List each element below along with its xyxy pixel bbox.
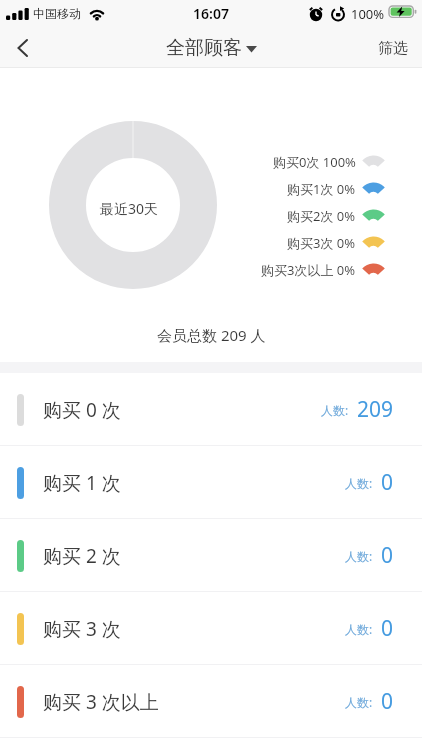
- staticText: 购买3次以上 0%: [261, 261, 356, 279]
- button[interactable]: [3, 28, 41, 68]
- staticText: 购买1次 0%: [287, 180, 356, 198]
- staticText: 人数:: [321, 402, 349, 418]
- button[interactable]: 购买 3 次以上: [0, 665, 422, 738]
- staticText: 0: [381, 468, 394, 497]
- staticText: 209: [357, 395, 394, 424]
- staticText: 购买 0 次: [43, 397, 121, 423]
- staticText: 中国移动: [33, 6, 81, 21]
- staticText: 0: [381, 687, 394, 716]
- button[interactable]: 购买 2 次: [0, 519, 422, 592]
- staticText: 购买3次 0%: [287, 234, 356, 252]
- staticText: 人数:: [345, 548, 373, 564]
- staticText: 100%: [351, 5, 385, 23]
- staticText: 购买 3 次: [43, 616, 121, 642]
- staticText: 人数:: [345, 475, 373, 491]
- staticText: 0: [381, 614, 394, 643]
- staticText: 购买2次 0%: [287, 207, 356, 225]
- staticText: 人数:: [345, 621, 373, 637]
- staticText: 购买0次 100%: [273, 153, 356, 171]
- button[interactable]: 购买 3 次: [0, 592, 422, 665]
- staticText: 筛选: [378, 39, 408, 58]
- staticText: 购买 1 次: [43, 470, 121, 496]
- button[interactable]: 筛选: [368, 28, 418, 68]
- staticText: 会员总数 209 人: [157, 325, 266, 345]
- staticText: 人数:: [345, 694, 373, 710]
- staticText: 16:07: [193, 4, 229, 23]
- staticText: 全部顾客: [166, 36, 242, 60]
- button[interactable]: 全部顾客: [166, 36, 257, 60]
- staticText: 0: [381, 541, 394, 570]
- staticText: 最近30天: [100, 199, 159, 218]
- button[interactable]: 购买 1 次: [0, 446, 422, 519]
- staticText: 购买 3 次以上: [43, 689, 159, 715]
- button[interactable]: 购买 0 次: [0, 373, 422, 446]
- staticText: 购买 2 次: [43, 543, 121, 569]
